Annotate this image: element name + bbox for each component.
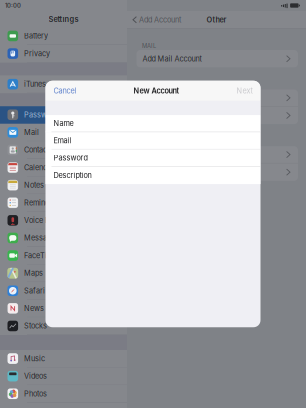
button[interactable]: Add LDAP Account <box>136 89 298 107</box>
button[interactable]: Voice Memos <box>0 212 127 229</box>
staticText: CONTACTS <box>142 81 173 88</box>
staticText: Next <box>236 86 252 95</box>
staticText: Battery <box>24 31 48 40</box>
button[interactable]: Maps <box>0 265 127 282</box>
staticText: Email <box>53 136 71 145</box>
button[interactable]: Contacts <box>0 141 127 159</box>
staticText: Add Account <box>139 15 181 24</box>
button[interactable]: Photos <box>0 385 127 403</box>
staticText: Name <box>53 119 73 128</box>
button[interactable]: Passwords <box>0 106 127 124</box>
staticText: Add LDAP Account <box>142 93 205 102</box>
button[interactable]: Videos <box>0 368 127 385</box>
staticText: FaceTime <box>24 251 57 260</box>
staticText: Notes <box>24 181 44 190</box>
button[interactable]: Stocks <box>0 317 127 335</box>
button[interactable]: Name <box>45 115 260 132</box>
button[interactable]: FaceTime <box>0 247 127 265</box>
staticText: Password <box>53 153 87 162</box>
staticText: Maps <box>24 269 43 278</box>
button[interactable]: Messages <box>0 229 127 247</box>
staticText: Add Mail Account <box>142 54 201 63</box>
button[interactable]: Next <box>236 82 260 99</box>
staticText: Photos <box>24 389 47 398</box>
staticText: Mail <box>24 128 39 137</box>
button[interactable]: Mail <box>0 124 127 141</box>
staticText: Other <box>206 15 226 24</box>
button[interactable]: Email <box>45 132 260 149</box>
button[interactable]: Password <box>45 150 260 167</box>
staticText: New Account <box>133 86 179 95</box>
staticText: Videos <box>24 372 47 381</box>
button[interactable]: iTunes <box>0 76 127 93</box>
button[interactable]: Battery <box>0 27 127 45</box>
button[interactable]: News <box>0 300 127 317</box>
button[interactable]: Add CalDAV Account <box>136 146 298 163</box>
button[interactable]: Cancel <box>45 82 76 99</box>
staticText: Cancel <box>53 86 76 95</box>
staticText: Safari <box>24 286 45 295</box>
staticText: Voice Memos <box>24 216 70 225</box>
button[interactable]: Add Subscribed Calendar <box>136 163 298 181</box>
staticText: Reminders <box>24 198 60 207</box>
staticText: Contacts <box>24 145 53 154</box>
staticText: Stocks <box>24 321 47 330</box>
button[interactable]: Reminders <box>0 194 127 212</box>
button[interactable]: Add CardDAV Account <box>136 107 298 124</box>
staticText: 10:00 <box>5 2 21 9</box>
staticText: Description <box>53 171 91 180</box>
staticText: Music <box>24 354 45 363</box>
button[interactable]: Notes <box>0 177 127 194</box>
staticText: MAIL <box>142 42 156 49</box>
staticText: Messages <box>24 233 59 242</box>
staticText: Calendar <box>24 163 54 172</box>
staticText: Settings <box>48 15 78 24</box>
staticText: Privacy <box>24 49 50 58</box>
button[interactable]: Privacy <box>0 45 127 63</box>
staticText: News <box>24 304 44 313</box>
staticText: iTunes <box>24 80 46 89</box>
button[interactable]: Add Mail Account <box>136 50 298 67</box>
button[interactable]: Calendar <box>0 159 127 177</box>
staticText: Passwords <box>24 110 62 119</box>
button[interactable]: Add Account <box>127 12 181 27</box>
button[interactable]: Description <box>45 167 260 184</box>
staticText: Add CardDAV Account <box>142 111 217 120</box>
button[interactable]: Music <box>0 350 127 368</box>
button[interactable]: Safari <box>0 282 127 300</box>
